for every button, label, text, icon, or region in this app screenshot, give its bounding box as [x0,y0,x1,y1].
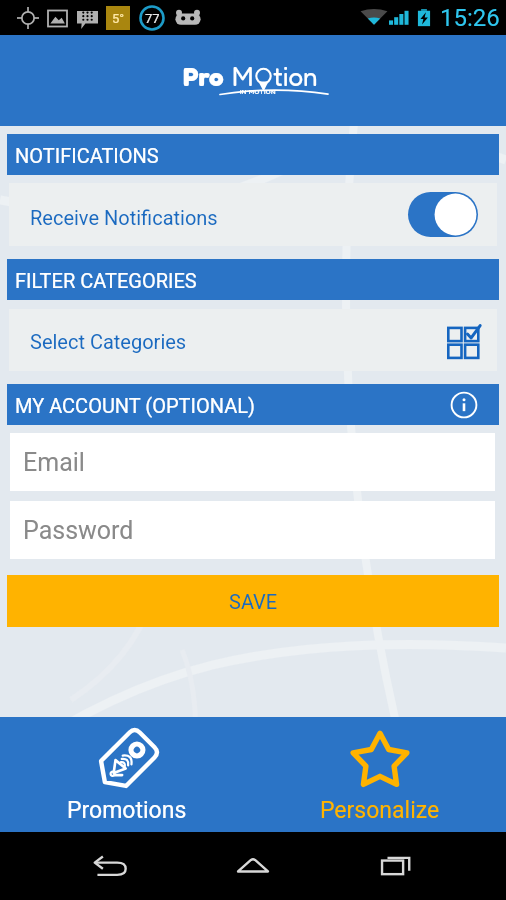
button[interactable]: Promotions [0,717,253,832]
staticText: 5° [112,11,125,26]
staticText: Select Categories [30,330,187,353]
button[interactable]: Email [10,433,495,491]
staticText: Promotions [67,797,187,824]
button[interactable]: Back [74,832,144,900]
staticText: MY ACCOUNT (OPTIONAL) [15,394,255,417]
staticText: Receive Notifications [30,206,218,229]
other: Personalize [349,729,411,791]
button[interactable]: Home [218,832,288,900]
button[interactable]: Password [10,501,495,559]
staticText: tion [273,61,318,92]
staticText: NOTIFICATIONS [15,144,159,167]
staticText: SAVE [229,590,278,613]
button[interactable]: Select Categories [9,309,497,371]
staticText: Pro [183,61,224,92]
other: Promotions [90,725,162,795]
button[interactable]: Info [448,389,480,421]
button[interactable]: Receive Notifications [9,183,497,246]
staticText: FILTER CATEGORIES [15,269,197,292]
other: Select categories [447,325,477,356]
staticText: Personalize [320,797,440,824]
staticText: Password [23,516,134,545]
staticText: 77 [145,11,160,26]
button[interactable]: Personalize [253,717,506,832]
staticText: M [232,61,254,92]
button[interactable]: Recents [362,832,432,900]
staticText: IN MOTION [240,88,276,96]
button[interactable]: SAVE [7,575,499,627]
staticText: 15:26 [440,4,500,32]
staticText: Email [23,448,85,477]
